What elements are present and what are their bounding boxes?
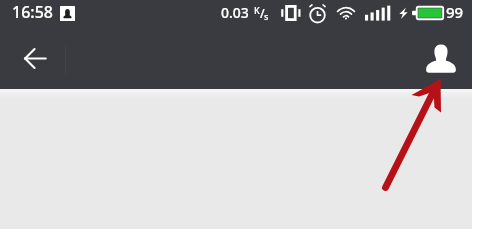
staticText: K (254, 4, 260, 16)
staticText: / (260, 5, 265, 21)
staticText: s (264, 10, 269, 22)
button[interactable]: Navigate back (11, 34, 59, 82)
staticText: 0.03 (221, 3, 249, 22)
staticText: 16:58 (12, 1, 53, 23)
button[interactable]: Profile (418, 35, 464, 81)
staticText: 99 (446, 2, 464, 22)
